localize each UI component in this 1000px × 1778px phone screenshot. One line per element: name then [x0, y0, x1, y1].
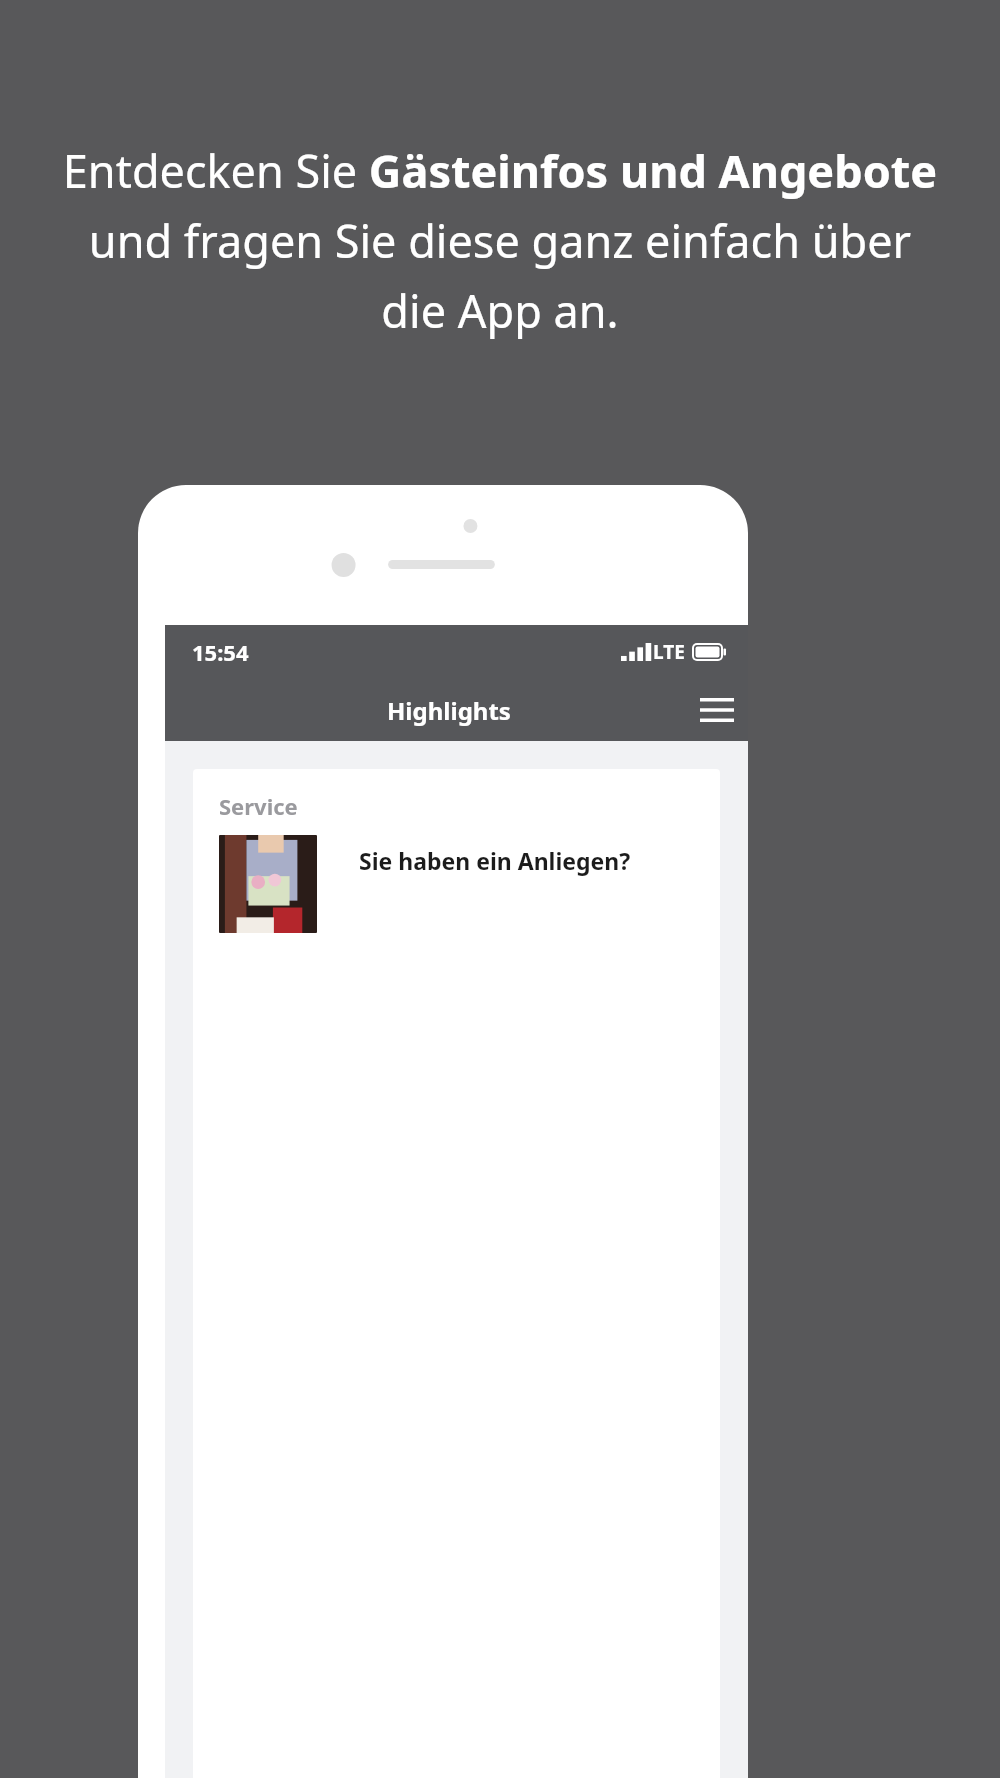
staticText: Highlights [387, 694, 511, 727]
staticText: Sie haben ein Anliegen? [359, 845, 631, 876]
button[interactable]: Service [193, 769, 720, 1778]
button[interactable]: Sie haben ein Anliegen? [219, 835, 694, 1778]
staticText: Service [219, 791, 298, 821]
staticText: 15:54 [192, 637, 249, 667]
button[interactable]: Menu [686, 679, 748, 741]
staticText: LTE [653, 639, 685, 665]
staticText: Entdecken Sie Gästeinfos und Angebote un… [58, 140, 942, 341]
